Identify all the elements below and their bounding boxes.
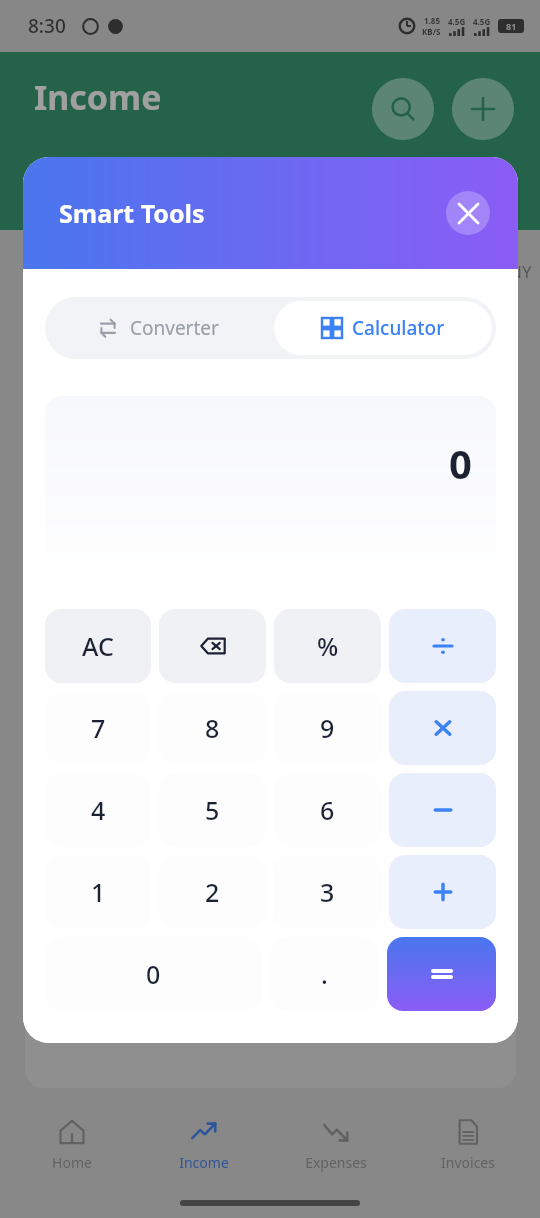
- button[interactable]: 0: [45, 937, 262, 1011]
- button[interactable]: Key: [159, 609, 266, 683]
- staticText: 9: [320, 711, 335, 745]
- staticText: 0: [449, 436, 472, 490]
- staticText: 3: [320, 875, 335, 909]
- staticText: 4: [91, 793, 106, 827]
- staticText: Calculator: [352, 315, 445, 341]
- staticText: 0: [146, 957, 161, 991]
- button[interactable]: 8: [159, 691, 266, 765]
- button[interactable]: Search: [372, 78, 434, 140]
- staticText: %: [317, 629, 339, 663]
- staticText: 8:30: [28, 13, 66, 39]
- staticText: Total (PKR): [34, 172, 114, 194]
- button[interactable]: Calculator: [274, 301, 492, 355]
- button[interactable]: Key: [389, 855, 496, 929]
- staticText: KB/S: [422, 26, 441, 37]
- button[interactable]: Close: [446, 191, 490, 235]
- staticText: Invoices: [441, 1153, 495, 1172]
- staticText: Converter: [130, 315, 219, 341]
- staticText: Income: [34, 74, 162, 120]
- button[interactable]: Expenses: [276, 1100, 396, 1188]
- staticText: Smart Tools: [59, 196, 205, 230]
- button[interactable]: 6: [274, 773, 381, 847]
- staticText: 7: [91, 711, 106, 745]
- staticText: 1: [91, 875, 106, 909]
- staticText: 6: [320, 793, 335, 827]
- staticText: 8: [205, 711, 220, 745]
- staticText: Transactions: [282, 172, 377, 194]
- button[interactable]: Add: [452, 78, 514, 140]
- button[interactable]: 9: [274, 691, 381, 765]
- button[interactable]: 5: [159, 773, 266, 847]
- staticText: 1.85: [424, 15, 440, 26]
- button[interactable]: 1: [45, 855, 151, 929]
- staticText: 5: [205, 793, 220, 827]
- staticText: Expenses: [305, 1153, 367, 1172]
- button[interactable]: Invoices: [408, 1100, 528, 1188]
- button[interactable]: Key: [389, 609, 496, 683]
- button[interactable]: %: [274, 609, 381, 683]
- button[interactable]: 2: [159, 855, 266, 929]
- button[interactable]: Equals: [387, 937, 496, 1011]
- staticText: 2: [205, 875, 220, 909]
- staticText: 4.5G: [473, 16, 491, 27]
- staticText: .: [321, 957, 328, 991]
- button[interactable]: Home: [12, 1100, 132, 1188]
- button[interactable]: Key: [389, 773, 496, 847]
- button[interactable]: Converter: [45, 297, 270, 359]
- button[interactable]: 7: [45, 691, 151, 765]
- button[interactable]: Key: [389, 691, 496, 765]
- button[interactable]: AC: [45, 609, 151, 683]
- button[interactable]: 4: [45, 773, 151, 847]
- staticText: NY: [509, 260, 532, 283]
- staticText: Home: [52, 1153, 92, 1172]
- button[interactable]: 3: [274, 855, 381, 929]
- staticText: 81: [506, 20, 517, 32]
- button[interactable]: .: [270, 937, 379, 1011]
- button[interactable]: Income: [144, 1100, 264, 1188]
- staticText: AC: [82, 629, 114, 663]
- staticText: Income: [179, 1153, 229, 1172]
- staticText: 4.5G: [448, 16, 466, 27]
